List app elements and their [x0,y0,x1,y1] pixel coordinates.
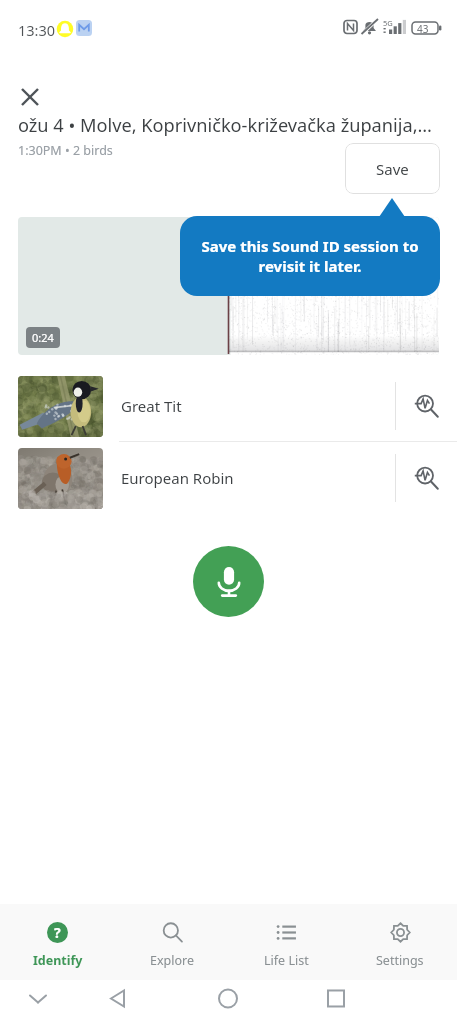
button[interactable]: Great Tit [0,370,457,442]
button[interactable]: Life List [229,904,343,980]
staticText: 5G [383,18,393,28]
staticText: 1:30PM • 2 birds [18,142,113,159]
button[interactable]: Explore [115,904,229,980]
staticText: European Robin [121,468,234,488]
staticText: Identify [33,952,83,969]
staticText: 43 [417,22,429,36]
button[interactable]: Save this Sound ID session to revisit it… [180,216,440,296]
button[interactable]: Save [345,143,440,194]
staticText: Explore [150,952,195,969]
button[interactable]: Sound ID [396,442,457,514]
button[interactable]: European Robin [0,442,457,514]
button[interactable]: Record [193,546,264,617]
button[interactable]: Close [14,81,46,113]
staticText: 13:30 [18,20,56,40]
staticText: Save this Sound ID session to revisit it… [199,236,421,276]
staticText: Settings [376,952,424,969]
staticText: Save [376,159,409,179]
staticText: Life List [264,952,309,969]
staticText: 0:24 [32,330,54,345]
staticText: ožu 4 • Molve, Koprivničko-križevačka žu… [18,113,432,138]
staticText: ? [54,923,61,942]
staticText: Great Tit [121,396,182,416]
button[interactable]: Sound ID [396,370,457,442]
button[interactable]: 0:24 [18,217,439,355]
button[interactable]: ? [0,904,115,980]
button[interactable]: Settings [343,904,457,980]
